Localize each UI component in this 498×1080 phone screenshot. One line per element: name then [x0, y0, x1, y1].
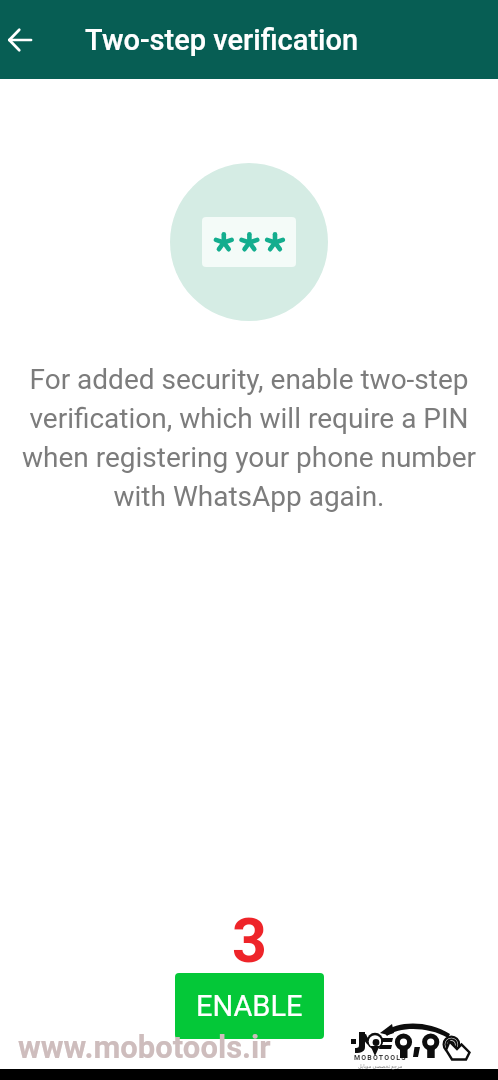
staticText: For added security, enable two-step veri… [14, 363, 484, 513]
staticText: Two-step verification [85, 23, 359, 57]
staticText: MOBOTOOLS [354, 1054, 407, 1062]
staticText: 3 [232, 905, 267, 967]
staticText: ENABLE [196, 989, 303, 1023]
staticText: www.mobotools.ir [18, 1029, 271, 1065]
staticText: مرجع تخصصی موبایل [358, 1063, 403, 1069]
button[interactable]: Back [0, 0, 40, 79]
button[interactable]: ENABLE [175, 973, 324, 1039]
